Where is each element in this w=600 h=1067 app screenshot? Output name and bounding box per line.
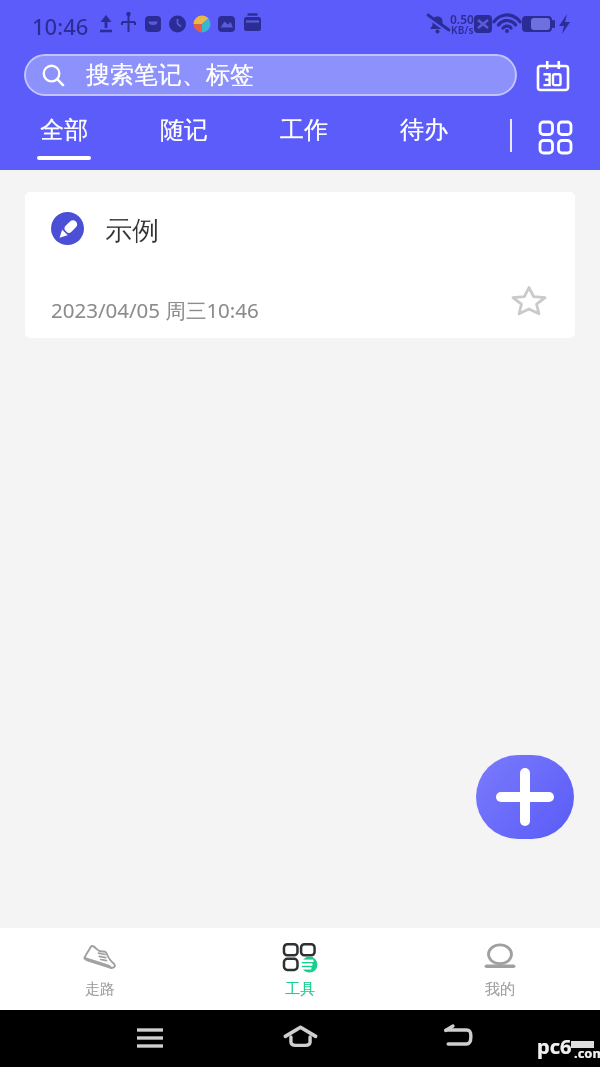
staticText: pc6 <box>537 1033 572 1060</box>
button[interactable]: 搜索笔记、标签 <box>24 54 517 96</box>
button[interactable]: 工作 <box>256 110 352 170</box>
button[interactable]: 走路 <box>0 928 200 1010</box>
staticText: 待办 <box>400 115 448 145</box>
staticText: 搜索笔记、标签 <box>86 60 254 90</box>
staticText: 随记 <box>160 115 208 145</box>
button[interactable]: 我的 <box>400 928 600 1010</box>
button[interactable]: Back <box>438 1016 478 1056</box>
staticText: 工具 <box>285 980 315 999</box>
button[interactable]: Grid view <box>532 114 574 156</box>
staticText: .com <box>574 1044 600 1062</box>
button[interactable]: Favorite <box>506 278 552 324</box>
staticText: 示例 <box>105 214 159 248</box>
button[interactable]: Home <box>280 1016 320 1056</box>
staticText: 走路 <box>85 980 115 999</box>
staticText: 全部 <box>40 115 88 145</box>
button[interactable]: Add note <box>476 755 574 839</box>
staticText: 2023/04/05 周三10:46 <box>51 296 259 324</box>
button[interactable]: 随记 <box>136 110 232 170</box>
staticText: 工作 <box>280 115 328 145</box>
button[interactable]: 工具 <box>200 928 400 1010</box>
button[interactable]: 示例 <box>25 192 575 338</box>
staticText: 10:46 <box>32 11 89 41</box>
staticText: KB/s <box>451 23 474 37</box>
button[interactable]: 全部 <box>16 110 112 170</box>
staticText: 0.50 <box>450 11 474 27</box>
staticText: 我的 <box>485 980 515 999</box>
button[interactable]: Calendar <box>532 56 574 98</box>
button[interactable]: Menu <box>130 1018 170 1058</box>
button[interactable]: 待办 <box>376 110 472 170</box>
